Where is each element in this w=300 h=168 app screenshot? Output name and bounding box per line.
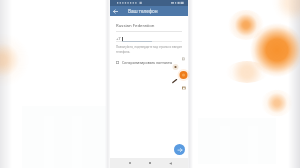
button[interactable]: Recents bbox=[126, 159, 134, 167]
button[interactable]: Back bbox=[110, 6, 120, 16]
staticText: телефона. bbox=[116, 50, 131, 54]
staticText: +7 bbox=[116, 36, 121, 42]
staticText: Пожалуйста, подтвердите код страны и вве… bbox=[116, 45, 182, 49]
button[interactable]: Continue bbox=[174, 144, 185, 155]
staticText: Russian Federation bbox=[116, 22, 155, 28]
button[interactable]: Синхронизировать контакты bbox=[116, 60, 182, 65]
staticText: Синхронизировать контакты bbox=[122, 60, 173, 65]
button[interactable]: Back bbox=[166, 159, 174, 167]
staticText: Ваш телефон bbox=[128, 8, 158, 14]
button[interactable]: Home bbox=[146, 159, 154, 167]
